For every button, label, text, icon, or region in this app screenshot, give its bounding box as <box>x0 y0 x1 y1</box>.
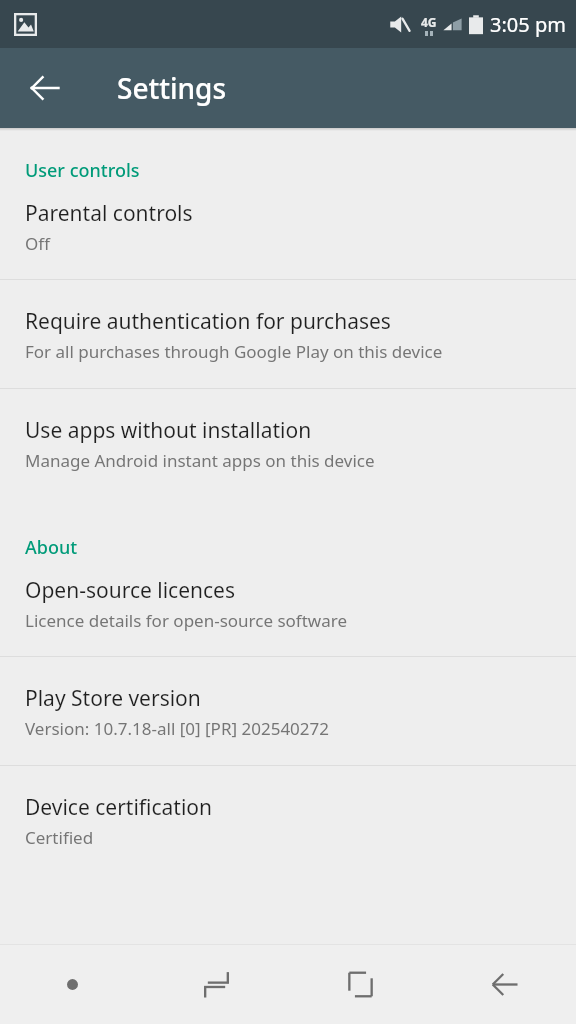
button[interactable]: Parental controls <box>0 183 576 279</box>
staticText: Certified <box>25 826 94 849</box>
button[interactable]: Menu <box>0 945 144 1024</box>
staticText: Version: 10.7.18-all [0] [PR] 202540272 <box>25 717 330 740</box>
staticText: Play Store version <box>25 684 201 713</box>
staticText: Parental controls <box>25 199 193 228</box>
staticText: 3:05 pm <box>490 11 566 38</box>
staticText: Use apps without installation <box>25 416 312 445</box>
staticText: For all purchases through Google Play on… <box>25 340 443 363</box>
staticText: User controls <box>25 158 576 183</box>
button[interactable]: Use apps without installation <box>0 389 576 497</box>
button[interactable]: Device certification <box>0 766 576 874</box>
button[interactable]: Back <box>432 945 576 1024</box>
staticText: Settings <box>117 69 227 107</box>
button[interactable]: Recent apps <box>144 945 288 1024</box>
staticText: Off <box>25 232 50 255</box>
button[interactable]: Home <box>288 945 432 1024</box>
button[interactable]: Navigate up <box>13 56 77 120</box>
staticText: About <box>25 535 576 560</box>
staticText: 4G <box>421 14 437 30</box>
button[interactable]: Play Store version <box>0 657 576 765</box>
button[interactable]: Open-source licences <box>0 560 576 656</box>
staticText: Manage Android instant apps on this devi… <box>25 449 375 472</box>
staticText: Device certification <box>25 793 213 822</box>
button[interactable]: Require authentication for purchases <box>0 280 576 388</box>
other: Silent mode <box>389 14 410 35</box>
staticText: Licence details for open-source software <box>25 609 348 632</box>
staticText: Require authentication for purchases <box>25 307 391 336</box>
staticText: Open-source licences <box>25 576 235 605</box>
